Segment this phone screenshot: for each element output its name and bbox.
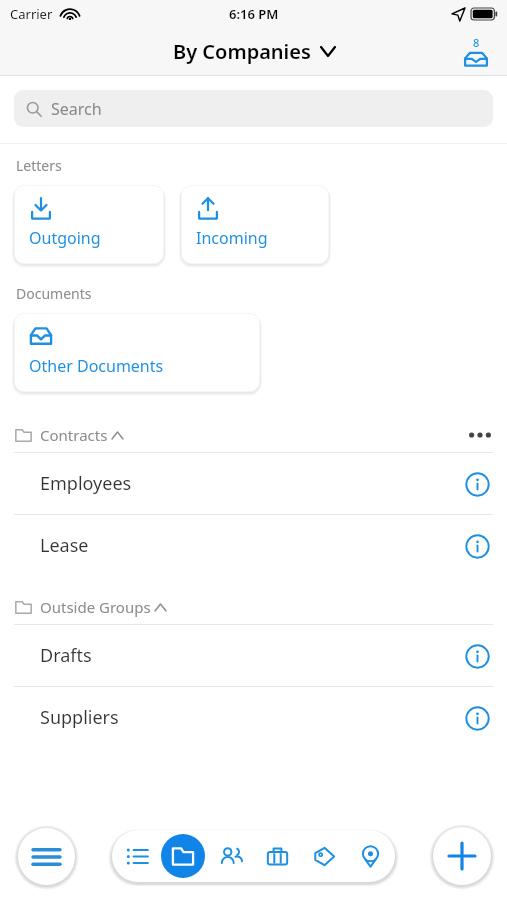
staticText: 8 bbox=[473, 35, 480, 50]
button[interactable]: Cases bbox=[255, 834, 299, 878]
staticText: Outgoing bbox=[29, 227, 101, 249]
button[interactable]: Info bbox=[457, 636, 497, 676]
staticText: Carrier bbox=[10, 5, 53, 23]
staticText: Other Documents bbox=[29, 355, 164, 377]
button[interactable]: Suppliers bbox=[0, 687, 507, 748]
button[interactable]: Contracts bbox=[15, 425, 123, 445]
button[interactable]: More options bbox=[461, 418, 499, 452]
button[interactable]: Incoming bbox=[181, 185, 329, 264]
staticText: Contracts bbox=[40, 425, 108, 445]
staticText: Outside Groups bbox=[40, 597, 151, 617]
staticText: Incoming bbox=[196, 227, 268, 249]
staticText: Suppliers bbox=[40, 705, 119, 730]
button[interactable]: Contacts bbox=[208, 834, 252, 878]
staticText: By Companies bbox=[173, 38, 311, 65]
button[interactable]: List bbox=[115, 834, 159, 878]
button[interactable]: Info bbox=[457, 526, 497, 566]
button[interactable]: Lease bbox=[0, 515, 507, 576]
button[interactable]: Tags bbox=[302, 834, 346, 878]
button[interactable]: Add bbox=[433, 827, 491, 885]
button[interactable]: Outgoing bbox=[14, 185, 164, 264]
button[interactable]: Menu bbox=[18, 828, 75, 885]
staticText: Drafts bbox=[40, 643, 92, 668]
button[interactable]: Info bbox=[457, 464, 497, 504]
button[interactable]: Other Documents bbox=[14, 313, 260, 392]
button[interactable]: Outside Groups bbox=[15, 597, 166, 617]
staticText: Documents bbox=[16, 284, 92, 303]
button[interactable]: Places bbox=[348, 834, 392, 878]
button[interactable]: Employees bbox=[0, 453, 507, 514]
staticText: 6:16 PM bbox=[229, 5, 279, 23]
button[interactable]: Downloads, 8 items bbox=[453, 29, 499, 75]
button[interactable]: Drafts bbox=[0, 625, 507, 686]
staticText: Search bbox=[51, 98, 102, 120]
button[interactable]: By Companies bbox=[173, 38, 335, 65]
staticText: Letters bbox=[16, 156, 62, 175]
staticText: Lease bbox=[40, 533, 89, 558]
staticText: Employees bbox=[40, 471, 132, 496]
button[interactable]: Info bbox=[457, 698, 497, 738]
button[interactable]: Search bbox=[14, 90, 493, 127]
button[interactable]: Folders bbox=[161, 834, 205, 878]
